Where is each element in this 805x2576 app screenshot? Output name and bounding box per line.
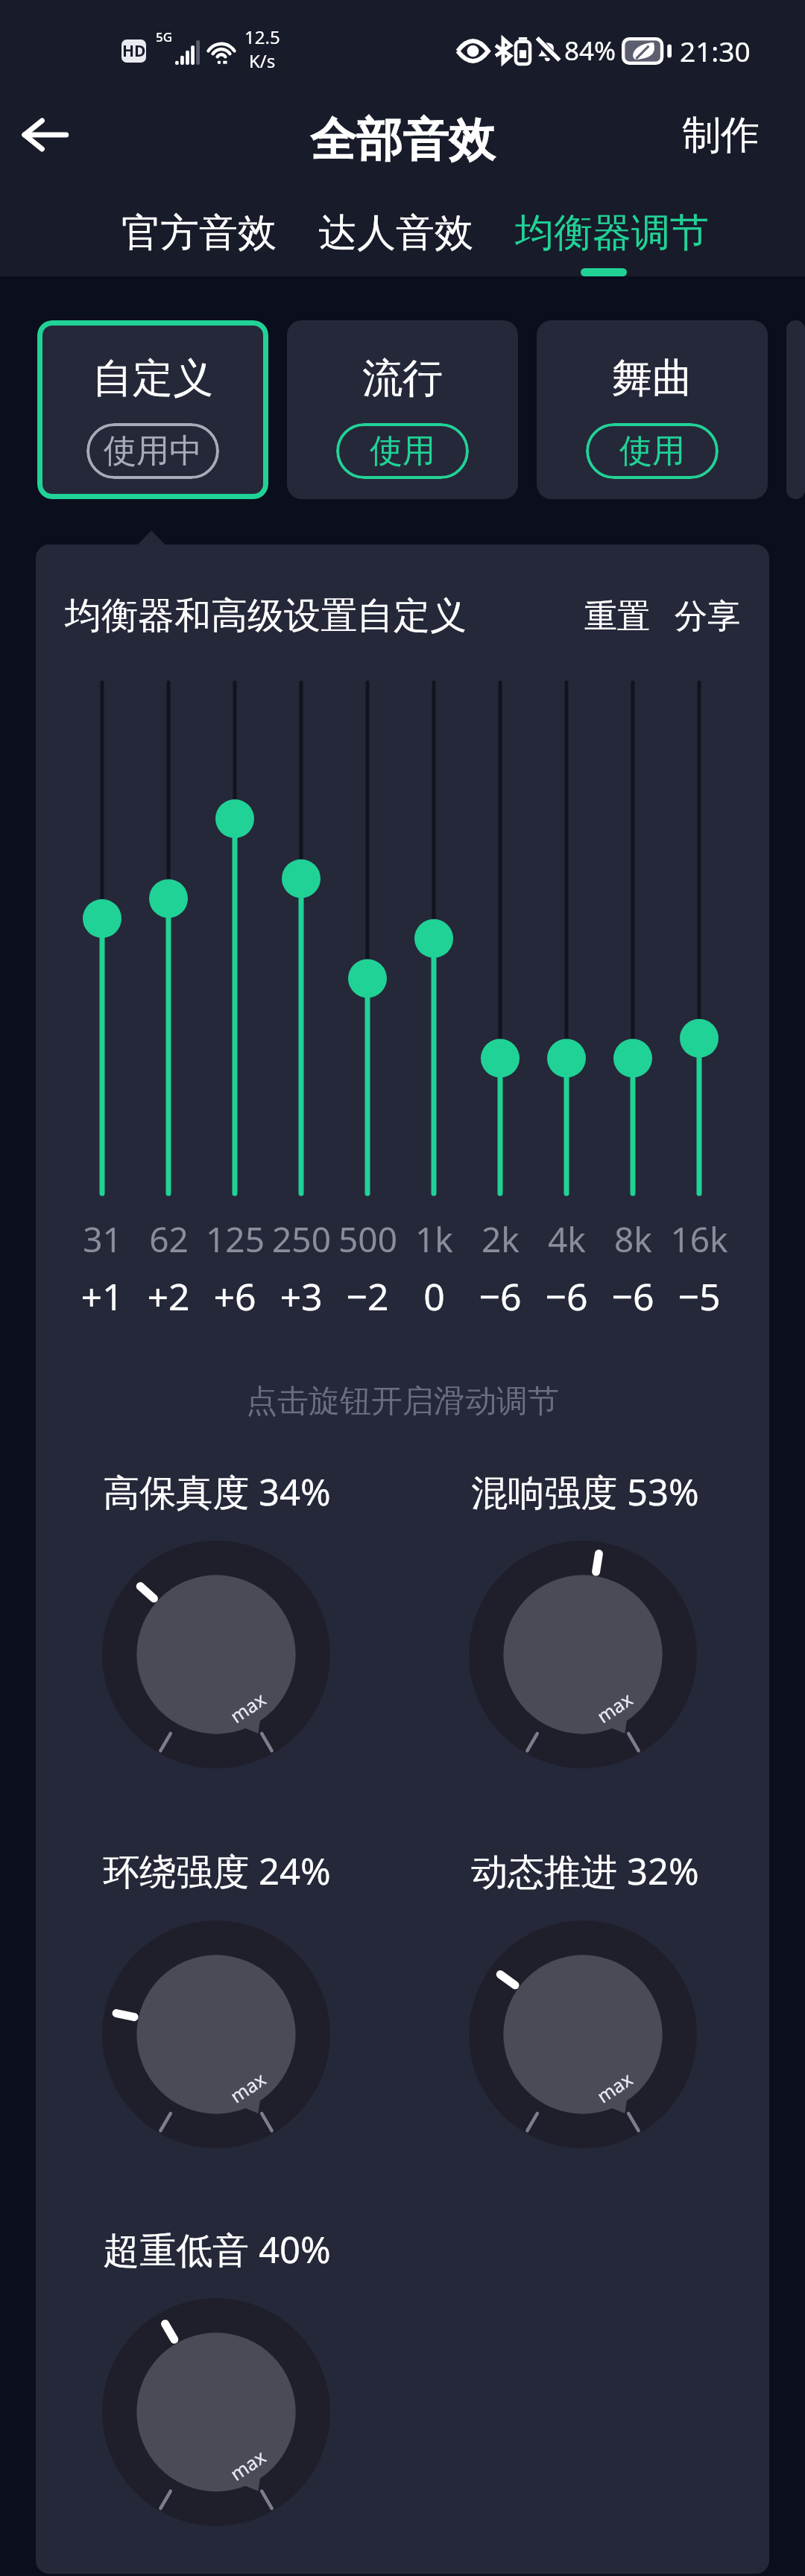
staticText: max — [592, 2066, 637, 2108]
button[interactable]: 动态推进 — [469, 1920, 697, 2148]
staticText: 84% — [564, 33, 616, 69]
button[interactable] — [786, 320, 805, 499]
staticText: HD — [122, 40, 146, 62]
staticText: 环绕强度 24% — [103, 1846, 331, 1896]
staticText: −6 — [611, 1271, 654, 1319]
staticText: 使用中 — [104, 431, 202, 472]
staticText: K/s — [249, 48, 276, 73]
staticText: 使用 — [619, 431, 685, 472]
staticText: 62 — [149, 1216, 189, 1263]
staticText: 31 — [83, 1216, 122, 1263]
staticText: 4k — [548, 1216, 586, 1263]
staticText: 0 — [423, 1271, 445, 1319]
staticText: 超重低音 40% — [103, 2224, 331, 2274]
staticText: 使用 — [370, 431, 435, 472]
staticText: 1k — [415, 1216, 453, 1263]
staticText: 混响强度 53% — [471, 1467, 699, 1517]
staticText: 500 — [338, 1216, 397, 1263]
staticText: max — [225, 2066, 271, 2108]
button[interactable]: 官方音效 — [101, 200, 297, 267]
staticText: 点击旋钮开启滑动调节 — [36, 1382, 769, 1421]
button[interactable]: Back — [4, 94, 86, 176]
staticText: 均衡器和高级设置自定义 — [65, 593, 467, 639]
staticText: −5 — [678, 1271, 721, 1319]
staticText: +6 — [213, 1271, 256, 1319]
button[interactable]: 舞曲 — [537, 320, 768, 499]
button[interactable]: 均衡器调节 — [494, 200, 730, 267]
button[interactable]: 使用 — [336, 423, 469, 479]
staticText: 2k — [482, 1216, 520, 1263]
button[interactable]: 混响强度 — [469, 1541, 697, 1768]
button[interactable]: 制作 — [667, 104, 805, 168]
button[interactable]: 高保真度 — [102, 1541, 330, 1768]
staticText: +2 — [147, 1271, 190, 1319]
staticText: max — [225, 1686, 271, 1728]
staticText: 21:30 — [680, 32, 751, 69]
staticText: −6 — [479, 1271, 522, 1319]
staticText: 5G — [156, 28, 173, 45]
staticText: +3 — [280, 1271, 323, 1319]
staticText: 舞曲 — [612, 353, 692, 404]
staticText: −2 — [346, 1271, 389, 1319]
button[interactable]: 达人音效 — [297, 200, 494, 267]
staticText: 12.5 — [244, 25, 280, 49]
staticText: −6 — [545, 1271, 588, 1319]
staticText: 达人音效 — [318, 209, 473, 258]
staticText: 均衡器调节 — [515, 209, 709, 258]
staticText: 16k — [670, 1216, 728, 1263]
button[interactable]: 自定义 — [37, 320, 268, 499]
button[interactable]: 重置 — [584, 596, 650, 637]
staticText: 分享 — [675, 596, 740, 637]
staticText: 流行 — [362, 353, 443, 404]
staticText: 8k — [614, 1216, 652, 1263]
button[interactable]: 环绕强度 — [102, 1920, 330, 2148]
staticText: max — [592, 1686, 637, 1728]
staticText: max — [225, 2444, 271, 2486]
button[interactable]: 流行 — [287, 320, 518, 499]
staticText: 制作 — [682, 111, 760, 160]
staticText: 全部音效 — [310, 111, 495, 169]
button[interactable]: 使用 — [586, 423, 719, 479]
staticText: 动态推进 32% — [471, 1846, 699, 1896]
button[interactable]: 超重低音 — [102, 2298, 330, 2526]
staticText: 250 — [272, 1216, 331, 1263]
staticText: 重置 — [584, 596, 650, 637]
staticText: 自定义 — [92, 353, 213, 404]
staticText: +1 — [80, 1271, 124, 1319]
staticText: 125 — [206, 1216, 265, 1263]
button[interactable]: 分享 — [675, 596, 740, 637]
staticText: 高保真度 34% — [103, 1467, 331, 1517]
staticText: 官方音效 — [121, 209, 277, 258]
button[interactable]: 使用中 — [86, 423, 219, 479]
